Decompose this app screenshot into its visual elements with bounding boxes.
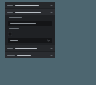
- button[interactable]: Select option dropdown: [8, 38, 52, 43]
- button[interactable]: More options: [5, 52, 55, 58]
- button[interactable]: Name text field: [8, 21, 52, 26]
- button[interactable]: More options: [50, 4, 53, 7]
- button[interactable]: More options: [50, 11, 53, 14]
- button[interactable]: More options: [5, 2, 55, 8]
- button[interactable]: More options: [50, 54, 53, 57]
- button[interactable]: More options: [5, 45, 55, 51]
- button[interactable]: Toggle option: [8, 32, 12, 36]
- button[interactable]: More options: [50, 47, 53, 50]
- button[interactable]: More options: [5, 9, 55, 15]
